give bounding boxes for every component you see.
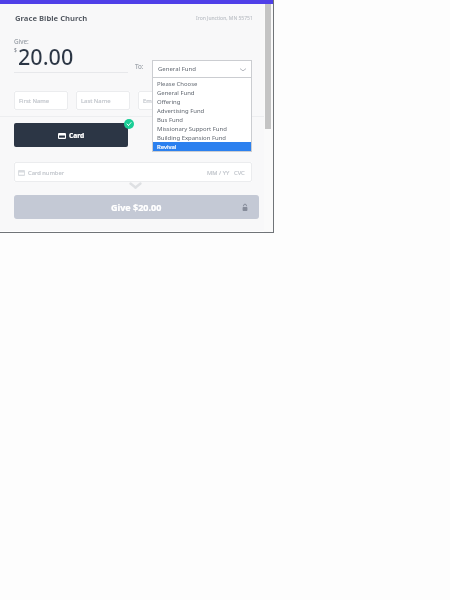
staticText: Revival — [157, 143, 177, 151]
staticText: Give $20.00 — [111, 201, 162, 213]
button[interactable]: Please Choose — [152, 79, 252, 88]
staticText: General Fund — [157, 89, 195, 97]
staticText: General Fund — [158, 65, 196, 73]
staticText: Last Name — [81, 97, 111, 105]
button[interactable]: Card — [14, 123, 128, 147]
staticText: Building Expansion Fund — [157, 134, 226, 142]
staticText: MM / YY — [207, 169, 230, 177]
other: Card selected — [124, 119, 134, 129]
staticText: Advertising Fund — [157, 107, 205, 115]
staticText: $ — [14, 47, 17, 54]
staticText: To: — [135, 62, 144, 71]
button[interactable]: General Fund — [152, 60, 252, 78]
staticText: First Name — [19, 97, 50, 105]
button[interactable]: Last Name — [76, 91, 130, 110]
staticText: Please Choose — [157, 80, 198, 88]
staticText: CVC — [234, 169, 245, 177]
button[interactable]: First Name — [14, 91, 68, 110]
button[interactable]: Missionary Support Fund — [152, 124, 252, 133]
button[interactable]: Email — [138, 91, 192, 110]
staticText: Iron Junction, MN 55751 — [196, 15, 253, 22]
button[interactable]: Give $20.00 — [14, 195, 259, 219]
button[interactable]: Advertising Fund — [152, 106, 252, 115]
staticText: 20.00 — [18, 42, 74, 71]
staticText: Missionary Support Fund — [157, 125, 227, 133]
staticText: Give: — [14, 37, 29, 46]
staticText: Email — [143, 97, 159, 105]
staticText: Grace Bible Church — [15, 13, 88, 23]
staticText: Card number — [28, 169, 65, 177]
staticText: Card — [69, 131, 85, 140]
button[interactable]: Building Expansion Fund — [152, 133, 252, 142]
button[interactable]: Revival — [152, 142, 252, 151]
button[interactable]: Bus Fund — [152, 115, 252, 124]
button[interactable]: Offering — [152, 97, 252, 106]
button[interactable]: General Fund — [152, 88, 252, 97]
staticText: Bus Fund — [157, 116, 183, 124]
staticText: Offering — [157, 98, 181, 106]
